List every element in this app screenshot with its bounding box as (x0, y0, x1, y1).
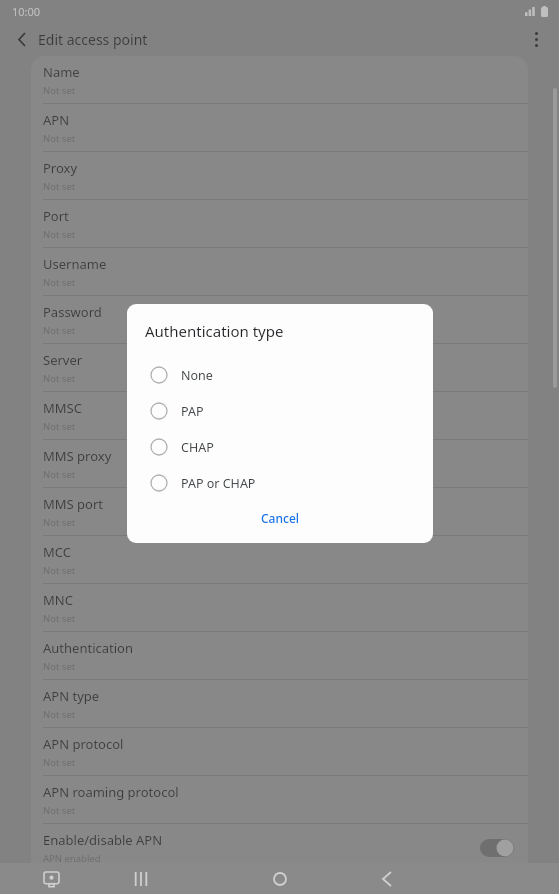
button[interactable]: MNC (31, 584, 528, 632)
staticText: Authentication (43, 639, 133, 657)
staticText: Name (43, 63, 80, 81)
staticText: Not set (43, 276, 76, 289)
staticText: Not set (43, 612, 76, 625)
staticText: MCC (43, 543, 71, 561)
staticText: APN protocol (43, 735, 124, 753)
staticText: Cancel (261, 510, 300, 526)
button[interactable]: Password (31, 296, 528, 344)
staticText: Not set (43, 84, 76, 97)
staticText: Port (43, 207, 69, 225)
staticText: Not set (43, 132, 76, 145)
staticText: MMS proxy (43, 447, 112, 465)
button[interactable]: APN (31, 104, 528, 152)
button[interactable]: APN type (31, 680, 528, 728)
button[interactable]: Port (31, 200, 528, 248)
staticText: APN (43, 111, 70, 129)
staticText: Not set (43, 708, 76, 721)
staticText: PAP (181, 403, 204, 420)
staticText: Not set (43, 420, 76, 433)
staticText: MMSC (43, 399, 82, 417)
button[interactable]: Name (31, 56, 528, 104)
staticText: Username (43, 255, 107, 273)
staticText: Edit access point (38, 30, 148, 49)
staticText: APN type (43, 687, 100, 705)
staticText: APN roaming protocol (43, 783, 179, 801)
button[interactable]: Username (31, 248, 528, 296)
staticText: Not set (43, 468, 76, 481)
button[interactable]: Home (263, 863, 297, 894)
button[interactable]: CHAP (127, 429, 433, 465)
button[interactable]: MCC (31, 536, 528, 584)
staticText: MMS port (43, 495, 104, 513)
staticText: Not set (43, 324, 76, 337)
staticText: Not set (43, 804, 76, 817)
button[interactable]: APN protocol (31, 728, 528, 776)
staticText: CHAP (181, 439, 214, 456)
staticText: Server (43, 351, 83, 369)
button[interactable]: Hide keyboard (36, 864, 66, 894)
staticText: Not set (43, 516, 76, 529)
button[interactable]: More options (522, 25, 550, 53)
button[interactable]: Authentication (31, 632, 528, 680)
staticText: Not set (43, 564, 76, 577)
staticText: Not set (43, 756, 76, 769)
button[interactable]: Recents (124, 863, 158, 894)
button[interactable]: Enable/disable APN (31, 824, 528, 872)
staticText: Password (43, 303, 102, 321)
button[interactable]: Proxy (31, 152, 528, 200)
staticText: Not set (43, 228, 76, 241)
staticText: MNC (43, 591, 73, 609)
button[interactable]: APN roaming protocol (31, 776, 528, 824)
staticText: Not set (43, 660, 76, 673)
staticText: 10:00 (12, 4, 41, 19)
staticText: APN enabled (43, 852, 101, 865)
button[interactable]: MMSC (31, 392, 528, 440)
staticText: Not set (43, 372, 76, 385)
button[interactable]: PAP or CHAP (127, 465, 433, 501)
staticText: Proxy (43, 159, 78, 177)
button[interactable]: MMS port (31, 488, 528, 536)
button[interactable]: MMS proxy (31, 440, 528, 488)
button[interactable]: Back (369, 863, 403, 894)
staticText: PAP or CHAP (181, 475, 256, 492)
button[interactable]: Server (31, 344, 528, 392)
staticText: Enable/disable APN (43, 831, 163, 849)
button[interactable]: None (127, 357, 433, 393)
button[interactable]: Cancel (249, 505, 312, 531)
button[interactable]: PAP (127, 393, 433, 429)
staticText: Authentication type (145, 321, 284, 341)
staticText: Not set (43, 180, 76, 193)
button[interactable]: Navigate up (9, 26, 35, 52)
staticText: None (181, 367, 213, 384)
